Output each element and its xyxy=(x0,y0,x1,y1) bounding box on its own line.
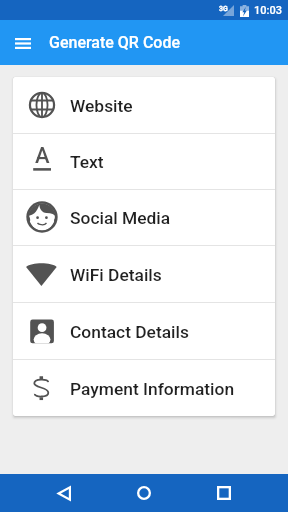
button[interactable]: A xyxy=(13,133,275,189)
staticText: Generate QR Code xyxy=(49,33,180,52)
staticText: 10:03 xyxy=(254,4,282,17)
staticText: Contact Details xyxy=(70,322,189,342)
staticText: A xyxy=(35,143,50,169)
button[interactable]: Back xyxy=(47,476,81,510)
staticText: Payment Information xyxy=(70,379,235,399)
staticText: Text xyxy=(70,152,104,172)
button[interactable]: WiFi Details xyxy=(13,245,275,302)
button[interactable]: Home xyxy=(127,476,161,510)
staticText: Social Media xyxy=(70,208,171,228)
button[interactable]: Website xyxy=(13,77,275,133)
button[interactable]: Contact Details xyxy=(13,302,275,359)
button[interactable]: Social Media xyxy=(13,189,275,245)
staticText: Website xyxy=(70,96,133,116)
button[interactable]: Recent apps xyxy=(207,476,241,510)
staticText: 3G xyxy=(219,5,228,13)
staticText: WiFi Details xyxy=(70,265,162,285)
button[interactable]: Open navigation drawer xyxy=(9,29,37,57)
button[interactable]: Payment Information xyxy=(13,359,275,416)
